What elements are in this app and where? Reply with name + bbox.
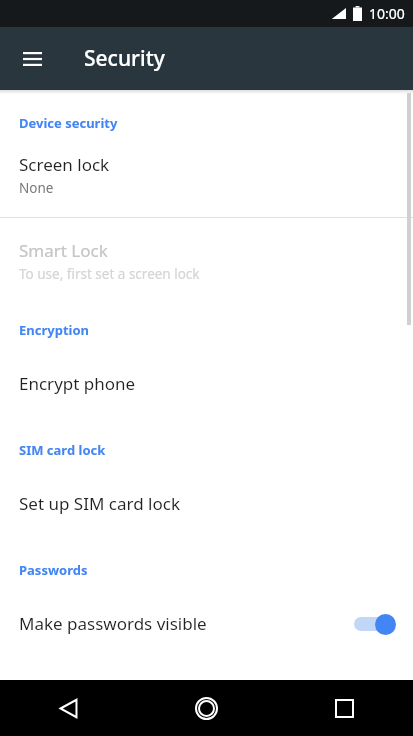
staticText: Screen lock [19,153,110,176]
button[interactable]: Screen lock [0,132,413,217]
staticText: Device security [19,114,118,132]
staticText: Security [84,44,165,73]
button[interactable]: Encrypt phone [0,339,413,423]
staticText: 10:00 [369,4,405,23]
button[interactable]: Back [0,680,137,736]
button[interactable]: Open navigation drawer [11,38,53,80]
button[interactable]: Recent apps [275,680,413,736]
staticText: To use, first set a screen lock [19,265,200,283]
button[interactable]: Set up SIM card lock [0,459,413,543]
staticText: None [19,179,54,197]
staticText: Encrypt phone [19,372,136,395]
staticText: SIM card lock [19,441,106,459]
staticText: Smart Lock [19,239,108,262]
staticText: Passwords [19,561,88,579]
button[interactable]: Make passwords visible [0,579,413,663]
staticText: Make passwords visible [19,612,352,635]
staticText: Set up SIM card lock [19,492,180,515]
button[interactable]: Smart Lock [0,218,413,303]
staticText: Encryption [19,321,89,339]
button[interactable]: Home [137,680,275,736]
